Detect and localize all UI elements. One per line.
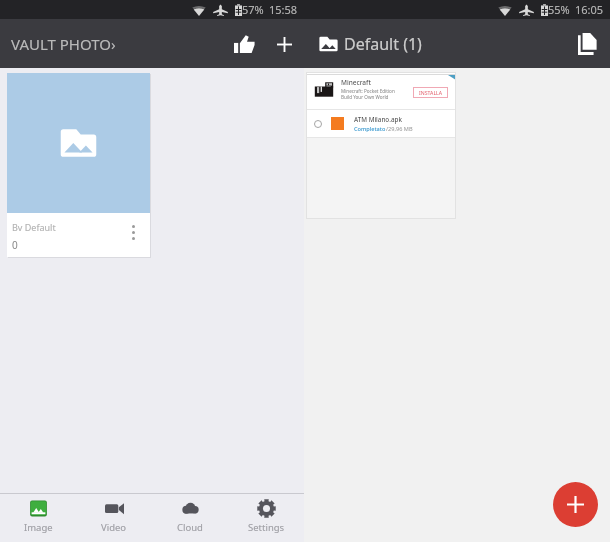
button[interactable]: INSTALLA	[413, 87, 448, 98]
button[interactable]: Cloud	[152, 494, 228, 542]
staticText: 57%	[242, 2, 264, 17]
button[interactable]: Add	[262, 25, 300, 63]
staticText: ATM Milano.apk	[354, 115, 402, 124]
staticText: 55%	[548, 2, 570, 17]
button[interactable]: More options	[122, 221, 144, 243]
staticText: Build Your Own World	[341, 94, 389, 100]
staticText: Settings	[248, 521, 285, 534]
button[interactable]: ATM Milano.apk	[306, 110, 456, 137]
staticText: VAULT PHOTO›	[11, 34, 116, 54]
staticText: Minecraft	[341, 78, 371, 87]
button[interactable]: Bv Default	[7, 73, 150, 257]
staticText: 16:05	[575, 2, 604, 17]
staticText: Bv Default	[12, 221, 56, 233]
staticText: Video	[101, 521, 127, 534]
staticText: 0	[12, 238, 18, 252]
button[interactable]: Image	[0, 494, 76, 542]
staticText: Minecraft: Pocket Edition	[341, 88, 395, 94]
button[interactable]: Copy	[569, 26, 605, 62]
staticText: 15:58	[269, 2, 298, 17]
staticText: Image	[24, 521, 53, 534]
button[interactable]: Settings	[228, 494, 304, 542]
staticText: Default (1)	[344, 33, 422, 55]
button[interactable]: Like	[219, 25, 257, 63]
staticText: Completato	[354, 125, 386, 133]
button[interactable]: Minecraft	[306, 75, 456, 109]
button[interactable]: Add	[553, 482, 598, 527]
staticText: /29,96 MB	[386, 125, 413, 133]
staticText: Cloud	[177, 521, 203, 534]
button[interactable]: Video	[76, 494, 152, 542]
staticText: INSTALLA	[419, 89, 443, 96]
